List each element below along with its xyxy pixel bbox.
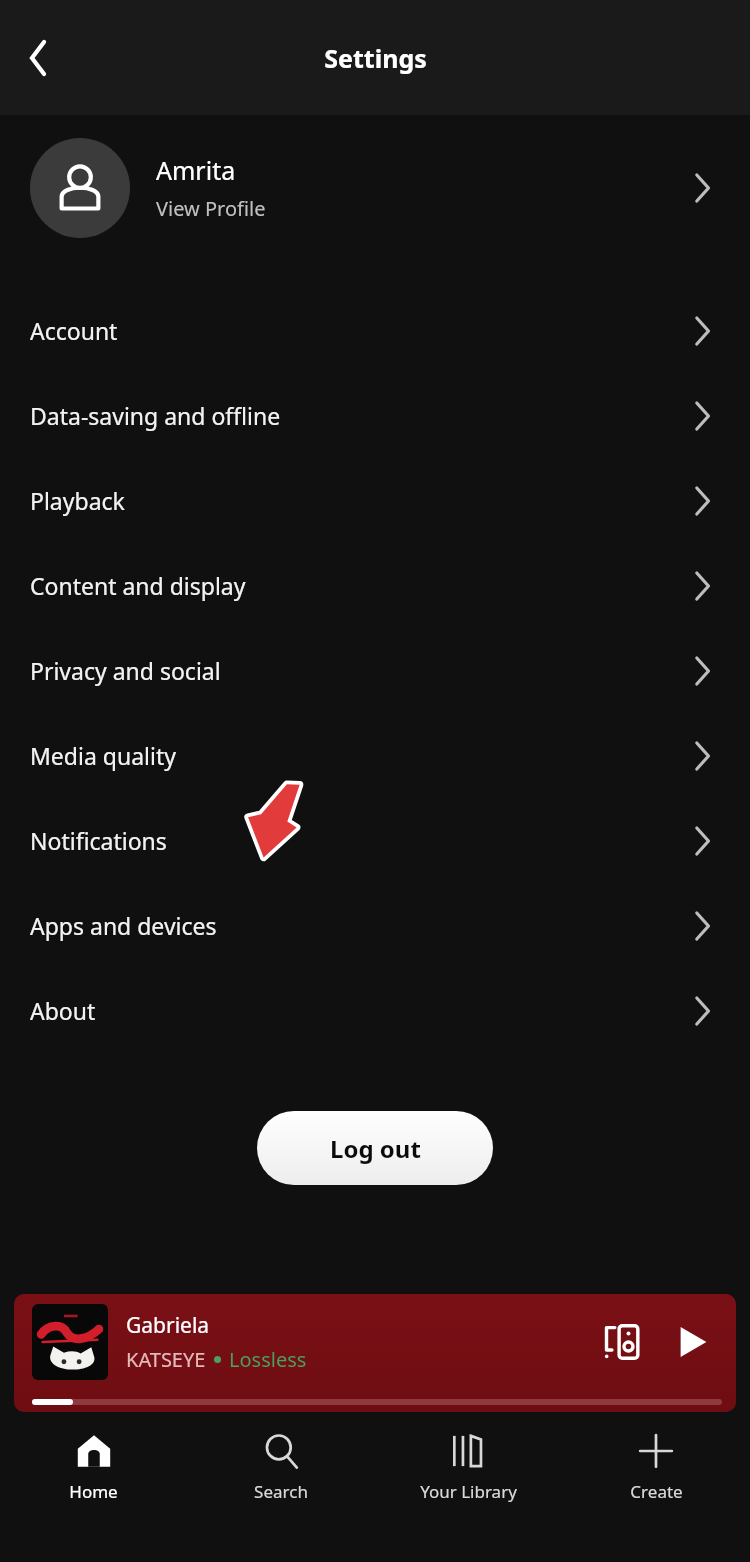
staticText: About <box>30 995 686 1026</box>
staticText: Amrita <box>156 153 236 187</box>
staticText: Gabriela <box>126 1311 210 1340</box>
button[interactable]: Your Library <box>374 1412 562 1532</box>
staticText: Lossless <box>229 1346 307 1373</box>
staticText: Home <box>69 1480 118 1503</box>
button[interactable]: Play <box>666 1316 718 1368</box>
button[interactable]: Connect to a device <box>594 1314 650 1370</box>
staticText: Data-saving and offline <box>30 400 686 431</box>
staticText: Settings <box>324 41 427 75</box>
button[interactable]: Back <box>8 28 68 88</box>
button[interactable]: Data-saving and offline <box>0 373 750 458</box>
staticText: Playback <box>30 485 686 516</box>
button[interactable]: Content and display <box>0 543 750 628</box>
button[interactable]: Create <box>562 1412 750 1532</box>
button[interactable]: Amrita <box>0 115 750 260</box>
button[interactable]: Home <box>0 1412 187 1532</box>
staticText: Create <box>630 1480 683 1503</box>
button[interactable]: Notifications <box>0 798 750 883</box>
staticText: Apps and devices <box>30 910 686 941</box>
button[interactable]: Gabriela <box>14 1294 736 1412</box>
staticText: Your Library <box>420 1480 517 1503</box>
button[interactable]: Log out <box>257 1111 493 1185</box>
staticText: KATSEYE <box>126 1346 206 1373</box>
button[interactable]: About <box>0 968 750 1053</box>
button[interactable]: Account <box>0 288 750 373</box>
staticText: Log out <box>330 1132 421 1165</box>
staticText: Privacy and social <box>30 655 686 686</box>
button[interactable]: Search <box>187 1412 374 1532</box>
button[interactable]: Privacy and social <box>0 628 750 713</box>
staticText: Search <box>254 1480 308 1503</box>
staticText: Media quality <box>30 740 686 771</box>
staticText: View Profile <box>156 195 266 222</box>
button[interactable]: Media quality <box>0 713 750 798</box>
button[interactable]: Playback <box>0 458 750 543</box>
staticText: Account <box>30 315 686 346</box>
staticText: Content and display <box>30 570 686 601</box>
staticText: Notifications <box>30 825 686 856</box>
button[interactable]: Apps and devices <box>0 883 750 968</box>
